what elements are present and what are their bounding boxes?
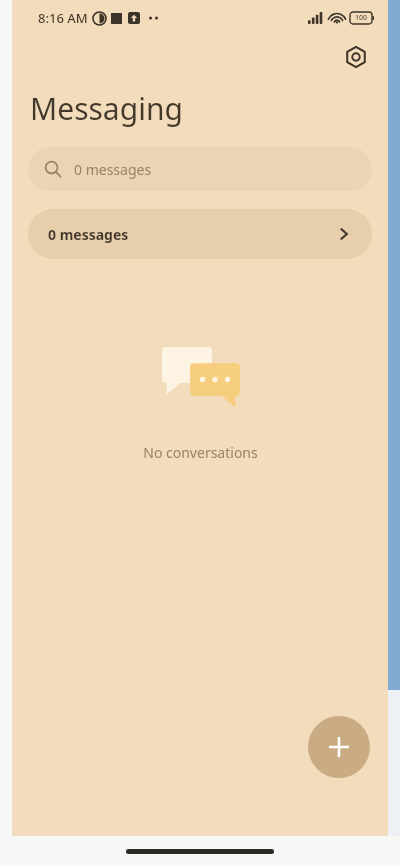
staticText: 100 <box>355 13 368 23</box>
button[interactable]: New conversation <box>308 716 370 778</box>
staticText: 0 messages <box>74 160 152 179</box>
staticText: Messaging <box>30 88 183 129</box>
button[interactable]: Settings <box>336 37 376 77</box>
button[interactable]: 0 messages <box>28 147 372 191</box>
staticText: 8:16 AM <box>38 9 88 27</box>
staticText: No conversations <box>143 443 258 462</box>
staticText: 0 messages <box>48 225 129 244</box>
button[interactable]: 0 messages <box>28 209 372 259</box>
